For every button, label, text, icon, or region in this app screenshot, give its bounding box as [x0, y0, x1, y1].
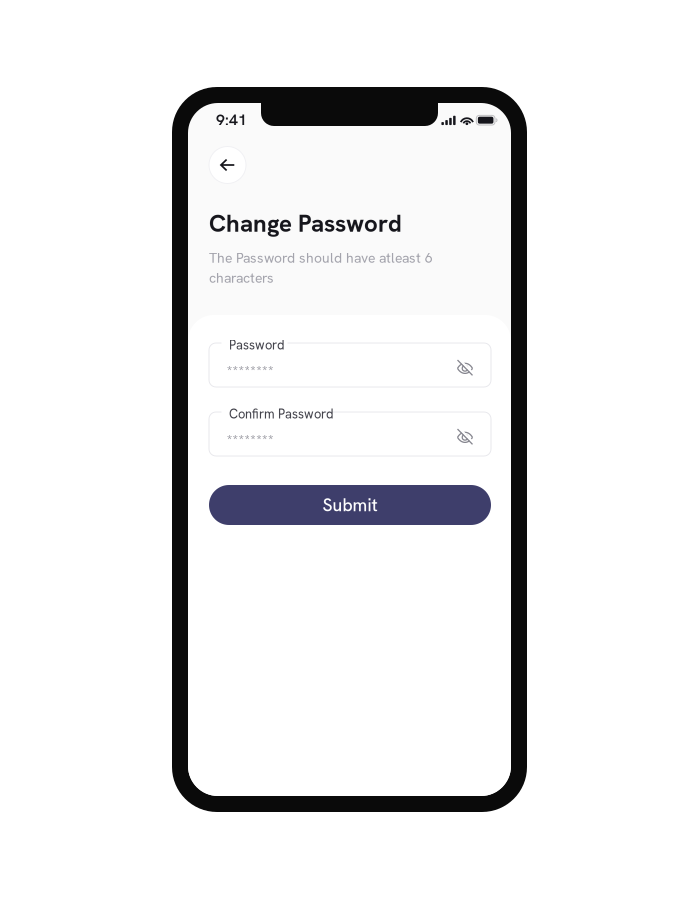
staticText: *: [262, 362, 268, 380]
staticText: *: [250, 362, 256, 380]
staticText: Confirm Password: [229, 406, 334, 422]
staticText: Password: [229, 337, 285, 353]
staticText: *: [233, 431, 239, 449]
staticText: *: [256, 362, 262, 380]
staticText: *: [238, 431, 244, 449]
staticText: *: [256, 431, 262, 449]
staticText: 9:41: [216, 110, 247, 130]
staticText: *: [250, 431, 256, 449]
staticText: *: [227, 431, 233, 449]
staticText: *: [244, 362, 250, 380]
staticText: *: [268, 431, 274, 449]
staticText: Change Password: [209, 208, 402, 239]
staticText: Submit: [322, 493, 377, 516]
staticText: *: [268, 362, 274, 380]
staticText: The Password should have atleast 6: [209, 249, 433, 267]
button[interactable]: Submit: [209, 485, 491, 525]
staticText: *: [244, 431, 250, 449]
button[interactable]: Password: [209, 343, 491, 387]
button[interactable]: Back: [209, 146, 246, 183]
button[interactable]: Confirm Password: [209, 412, 491, 456]
staticText: *: [233, 362, 239, 380]
staticText: characters: [209, 269, 274, 287]
staticText: *: [262, 431, 268, 449]
staticText: *: [227, 362, 233, 380]
staticText: *: [238, 362, 244, 380]
